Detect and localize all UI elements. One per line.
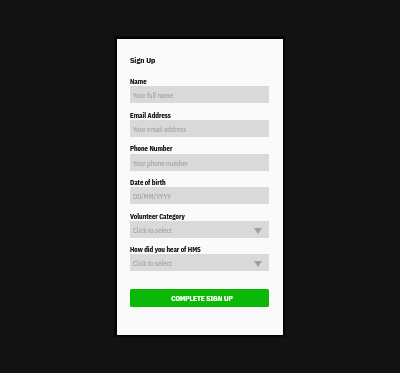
staticText: Volunteer Category <box>130 212 185 221</box>
button[interactable]: Your phone number <box>130 154 269 171</box>
button[interactable]: DD/MM/YYYY <box>130 187 269 204</box>
staticText: Your full name <box>133 91 174 100</box>
button[interactable]: Your email address <box>130 120 269 137</box>
staticText: Phone Number <box>130 144 173 153</box>
staticText: Email Address <box>130 111 171 120</box>
button[interactable]: COMPLETE SIGN UP <box>130 289 269 307</box>
staticText: Name <box>130 77 147 86</box>
button[interactable]: Click to select <box>130 254 269 271</box>
staticText: Email Address <box>130 111 171 120</box>
staticText: Phone Number <box>130 144 173 153</box>
staticText: Volunteer Category <box>130 212 185 221</box>
staticText: Click to select <box>133 259 172 268</box>
staticText: Your phone number <box>133 159 188 168</box>
other: Open How did you hear of HMS options <box>254 261 262 267</box>
staticText: DD/MM/YYYY <box>133 192 171 201</box>
staticText: COMPLETE SIGN UP <box>171 294 233 303</box>
other: Open Volunteer Category options <box>254 228 262 234</box>
staticText: Click to select <box>133 226 172 235</box>
staticText: Name <box>130 77 147 86</box>
staticText: Date of birth <box>130 178 166 187</box>
button[interactable]: Click to select <box>130 221 269 238</box>
staticText: Date of birth <box>130 178 166 187</box>
button[interactable]: Your full name <box>130 86 269 103</box>
staticText: How did you hear of HMS <box>130 245 201 254</box>
staticText: Sign Up <box>130 55 156 65</box>
staticText: How did you hear of HMS <box>130 245 201 254</box>
staticText: Sign Up <box>130 55 156 65</box>
staticText: Your email address <box>133 125 187 134</box>
